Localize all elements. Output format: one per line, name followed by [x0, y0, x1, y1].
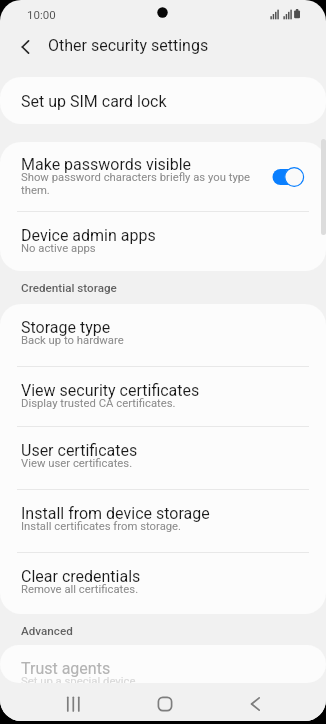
- button[interactable]: Recent apps: [50, 686, 97, 721]
- staticText: 10:00: [27, 8, 56, 21]
- staticText: Advanced: [21, 624, 73, 638]
- button[interactable]: User certificates: [0, 427, 326, 489]
- staticText: Install from device storage: [21, 504, 210, 523]
- staticText: Make passwords visible: [21, 155, 192, 174]
- staticText: User certificates: [21, 441, 138, 460]
- button[interactable]: Back: [232, 686, 279, 721]
- staticText: Clear credentials: [21, 567, 141, 586]
- staticText: Trust agents: [21, 659, 111, 678]
- staticText: Show password characters briefly as you …: [21, 171, 261, 196]
- button[interactable]: Set up SIM card lock: [0, 77, 326, 124]
- button[interactable]: Device admin apps: [0, 212, 326, 271]
- staticText: View user certificates.: [21, 457, 133, 470]
- button[interactable]: Clear credentials: [0, 553, 326, 614]
- button[interactable]: View security certificates: [0, 367, 326, 426]
- button[interactable]: Storage type: [0, 304, 326, 366]
- button[interactable]: Install from device storage: [0, 490, 326, 552]
- staticText: Display trusted CA certificates.: [21, 397, 176, 410]
- staticText: No active apps: [21, 242, 96, 255]
- button[interactable]: Navigate up: [12, 33, 40, 61]
- staticText: Set up SIM card lock: [21, 92, 167, 111]
- button[interactable]: Trust agents: [0, 645, 326, 683]
- staticText: Back up to hardware: [21, 334, 124, 347]
- staticText: Install certificates from storage.: [21, 520, 182, 533]
- staticText: Remove all certificates.: [21, 583, 139, 596]
- staticText: Set up a special device: [21, 675, 136, 683]
- staticText: Other security settings: [48, 36, 209, 55]
- staticText: Device admin apps: [21, 226, 156, 245]
- button[interactable]: Home: [141, 686, 188, 721]
- staticText: View security certificates: [21, 381, 200, 400]
- staticText: Credential storage: [21, 281, 117, 295]
- button[interactable]: Make passwords visible toggle: [272, 166, 306, 188]
- staticText: Storage type: [21, 318, 111, 337]
- button[interactable]: Make passwords visible: [0, 142, 326, 211]
